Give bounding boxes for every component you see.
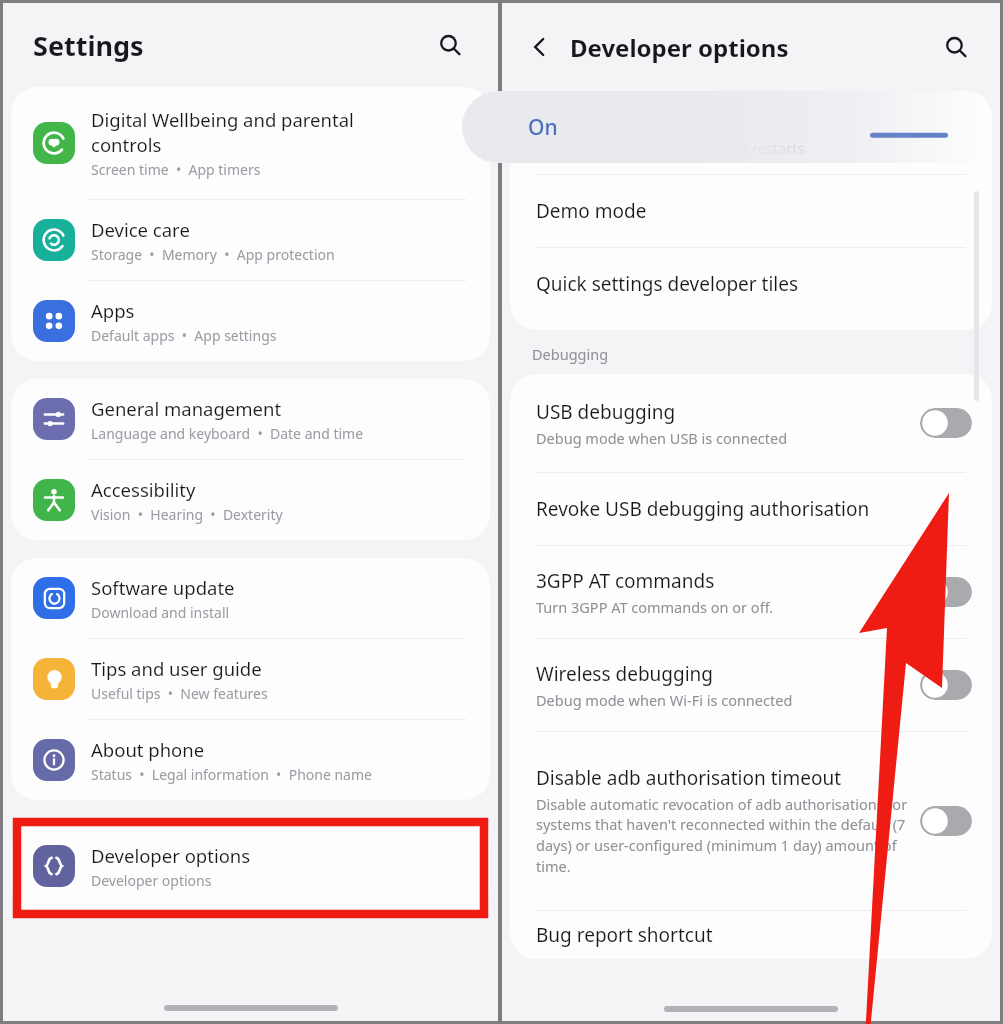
button[interactable]: Wireless debugging — [920, 670, 972, 700]
staticText: Device care — [91, 217, 190, 242]
button[interactable]: Disable adb authorisation timeout — [510, 732, 992, 910]
staticText: Wireless debugging — [536, 661, 714, 687]
button[interactable]: Quick settings developer tiles — [510, 248, 992, 320]
staticText: About phone — [91, 737, 205, 762]
staticText: Storage • Memory • App protection — [91, 245, 335, 264]
button[interactable]: Back — [518, 25, 562, 69]
staticText: 3GPP AT commands — [536, 568, 715, 594]
staticText: Default apps • App settings — [91, 326, 277, 345]
button[interactable]: 3GPP AT commands — [920, 577, 972, 607]
button[interactable]: Device care — [11, 200, 490, 280]
button[interactable]: Search — [934, 25, 978, 69]
staticText: Disable adb authorisation timeout — [536, 765, 842, 791]
button[interactable]: Auto update system — [510, 109, 992, 174]
staticText: Bug report shortcut — [536, 922, 713, 948]
staticText: Tips and user guide — [91, 656, 262, 681]
button[interactable]: Tips and user guide — [11, 639, 490, 719]
button[interactable]: Developer options — [11, 818, 490, 914]
staticText: USB debugging — [536, 399, 676, 425]
button[interactable]: Disable adb authorisation timeout — [920, 806, 972, 836]
staticText: General management — [91, 396, 282, 421]
button[interactable]: Software update — [11, 558, 490, 638]
staticText: Auto update system — [536, 109, 715, 135]
staticText: Disable automatic revocation of adb auth… — [536, 794, 908, 877]
button[interactable]: Wireless debugging — [510, 639, 992, 731]
staticText: Apps — [91, 298, 135, 323]
staticText: Screen time • App timers — [91, 160, 261, 179]
button[interactable]: USB debugging — [510, 374, 992, 472]
staticText: Language and keyboard • Date and time — [91, 424, 364, 443]
button[interactable]: Bug report shortcut — [510, 911, 992, 959]
button[interactable]: Search — [428, 23, 472, 67]
button[interactable]: Demo mode — [510, 175, 992, 247]
staticText: Developer options — [91, 843, 251, 868]
button[interactable]: 3GPP AT commands — [510, 546, 992, 638]
staticText: Quick settings developer tiles — [536, 271, 799, 297]
staticText: On — [528, 113, 558, 142]
staticText: Revoke USB debugging authorisation — [536, 496, 870, 522]
button[interactable]: Apps — [11, 281, 490, 361]
staticText: Software update — [91, 575, 235, 600]
button[interactable]: General management — [11, 379, 490, 459]
staticText: Debug mode when USB is connected — [536, 428, 788, 448]
button[interactable]: USB debugging — [920, 408, 972, 438]
staticText: Accessibility — [91, 477, 196, 502]
button[interactable]: Digital Wellbeing and parental controls — [11, 87, 490, 199]
staticText: Digital Wellbeing and parental controls — [91, 107, 354, 157]
staticText: Useful tips • New features — [91, 684, 268, 703]
button[interactable]: Revoke USB debugging authorisation — [510, 473, 992, 545]
staticText: Debug mode when Wi-Fi is connected — [536, 690, 793, 710]
staticText: Developer options — [91, 871, 212, 890]
button[interactable]: Developer options — [11, 818, 490, 914]
staticText: Developer options — [570, 31, 789, 64]
staticText: Demo mode — [536, 198, 647, 224]
staticText: Download and install — [91, 603, 230, 622]
staticText: Settings — [33, 27, 144, 64]
button[interactable]: Accessibility — [11, 460, 490, 540]
staticText: Turn 3GPP AT commands on or off. — [536, 597, 774, 617]
button[interactable]: About phone — [11, 720, 490, 800]
staticText: Debugging — [532, 344, 609, 364]
staticText: Status • Legal information • Phone name — [91, 765, 372, 784]
staticText: Vision • Hearing • Dexterity — [91, 505, 283, 524]
